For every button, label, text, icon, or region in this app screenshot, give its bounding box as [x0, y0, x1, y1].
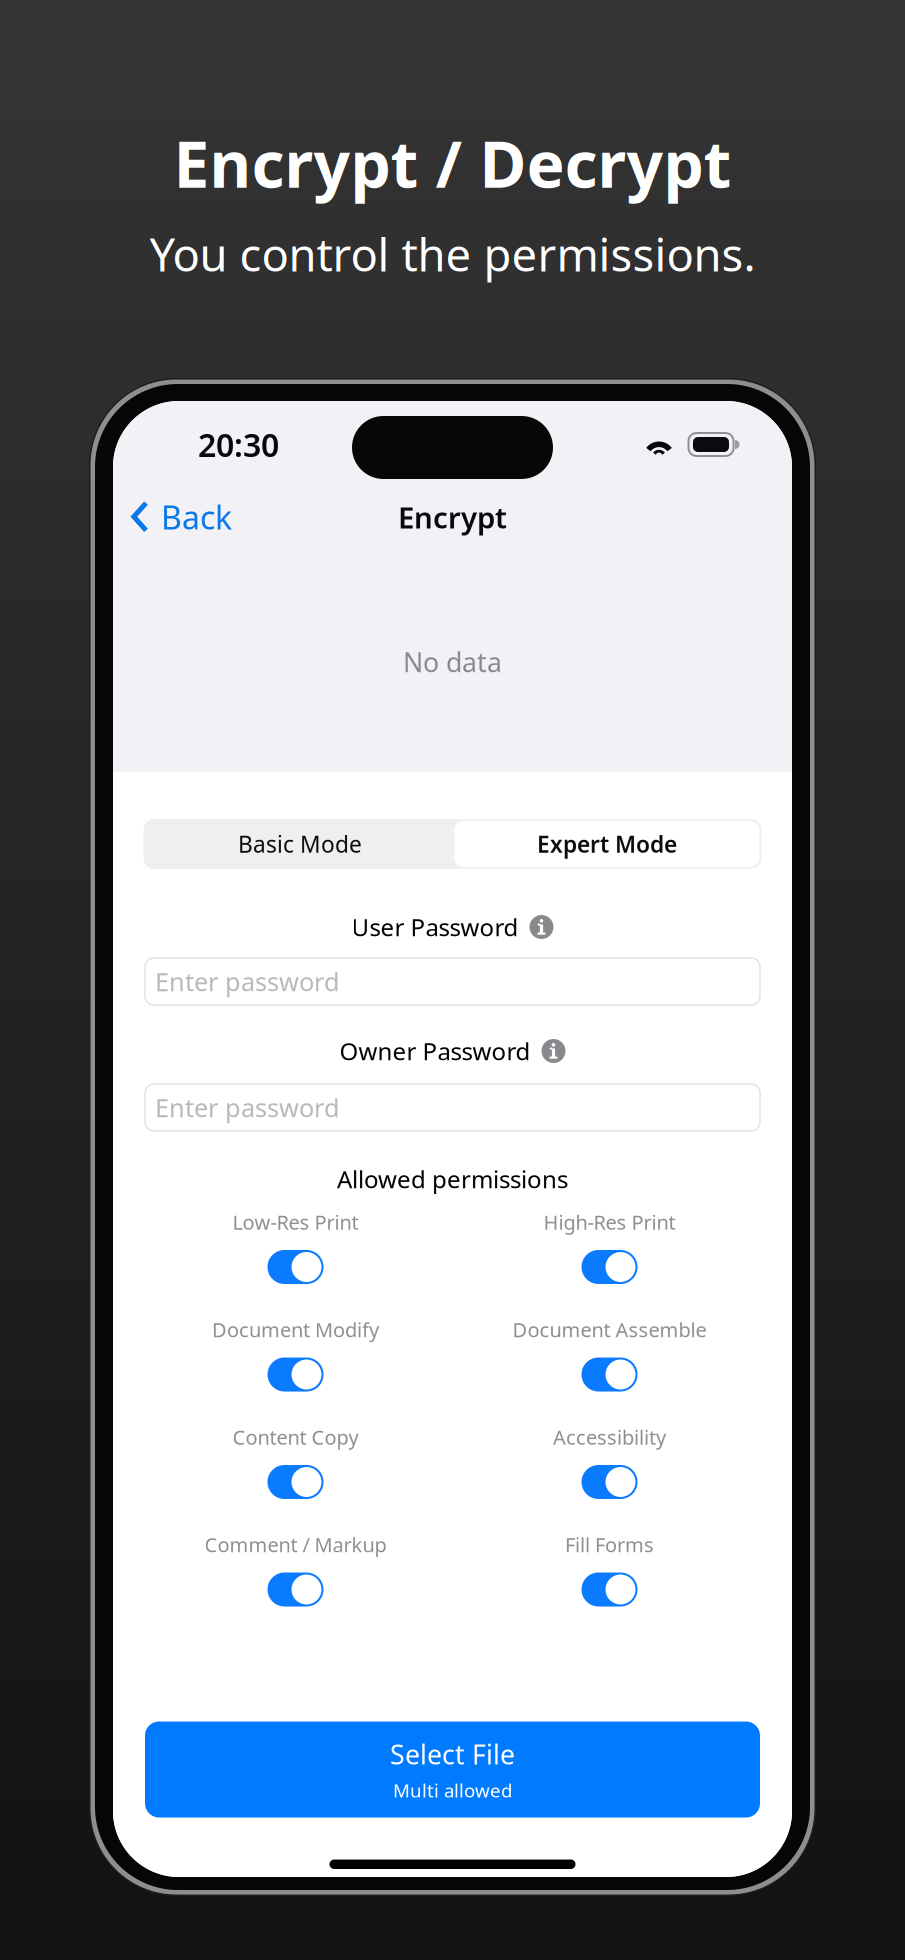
staticText: Allowed permissions [337, 1163, 568, 1195]
button[interactable]: Enter password [145, 958, 760, 1005]
button[interactable]: Document Assemble [452, 1314, 766, 1422]
staticText: Select File [390, 1736, 515, 1772]
button[interactable]: Select File [145, 1721, 760, 1817]
staticText: Back [161, 496, 232, 538]
staticText: User Password [351, 911, 518, 943]
staticText: You control the permissions. [149, 224, 755, 284]
button[interactable]: Comment / Markup [138, 1529, 452, 1637]
button[interactable]: Document Modify [138, 1314, 452, 1422]
staticText: No data [403, 644, 502, 680]
staticText: Basic Mode [238, 829, 362, 859]
staticText: Document Modify [212, 1316, 379, 1343]
staticText: Multi allowed [393, 1778, 512, 1803]
button[interactable]: More info [529, 915, 553, 939]
button[interactable]: More info [541, 1039, 565, 1063]
button[interactable]: Low-Res Print [138, 1207, 452, 1314]
button[interactable]: Content Copy [138, 1422, 452, 1529]
button[interactable]: Basic Mode [145, 821, 454, 867]
button[interactable]: Fill Forms [452, 1529, 766, 1637]
staticText: Low-Res Print [232, 1209, 358, 1235]
staticText: Content Copy [232, 1424, 358, 1450]
staticText: Fill Forms [565, 1531, 654, 1558]
staticText: Encrypt / Decrypt [173, 120, 731, 205]
staticText: Encrypt [398, 497, 507, 536]
staticText: Document Assemble [512, 1316, 706, 1343]
button[interactable]: Back [131, 486, 232, 548]
staticText: Expert Mode [537, 829, 677, 859]
staticText: Comment / Markup [204, 1531, 386, 1558]
button[interactable]: High-Res Print [452, 1207, 766, 1314]
staticText: 20:30 [198, 423, 279, 466]
staticText: Owner Password [339, 1035, 530, 1067]
staticText: Accessibility [553, 1424, 666, 1450]
button[interactable]: Enter password [145, 1084, 760, 1131]
staticText: Enter password [155, 965, 340, 998]
button[interactable]: Expert Mode [454, 821, 759, 867]
button[interactable]: Accessibility [452, 1422, 766, 1529]
staticText: High-Res Print [543, 1209, 675, 1235]
staticText: Enter password [155, 1091, 340, 1124]
